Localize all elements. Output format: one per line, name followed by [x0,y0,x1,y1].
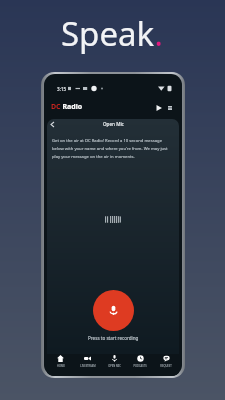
button[interactable]: Menu [165,103,174,112]
button[interactable]: Back [47,119,58,129]
staticText: Press to start recording [88,335,139,341]
staticText: OPEN MIC [108,364,121,368]
staticText: 3:15 [57,86,67,92]
button[interactable]: REQUEST [153,354,179,369]
staticText: HOME [57,364,65,368]
staticText: Speak. [61,11,164,56]
button[interactable]: PODCASTS [127,354,153,369]
button[interactable]: Play live stream [154,103,163,112]
staticText: Get on the air at DC Radio! Record a 10 … [52,138,174,159]
button[interactable]: LIVESTREAM [74,354,101,369]
staticText: REQUEST [160,364,172,368]
button[interactable]: HOME [47,354,74,369]
staticText: LIVESTREAM [80,364,96,368]
staticText: DC Radio [51,102,83,112]
staticText: Open Mic [103,121,124,127]
button[interactable]: Start recording [93,290,134,331]
staticText: PODCASTS [133,364,147,368]
button[interactable]: OPEN MIC [101,354,127,369]
